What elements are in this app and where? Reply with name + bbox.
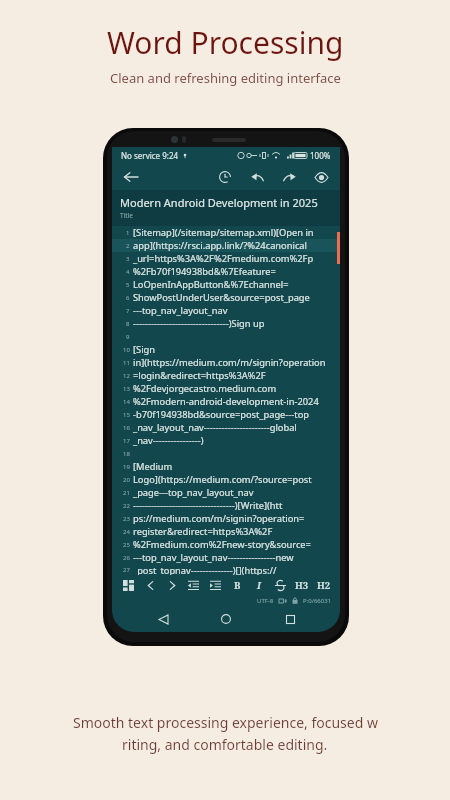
staticText: UTF-8 [257, 597, 274, 605]
staticText: 25 [123, 541, 130, 549]
button[interactable]: Outdent [184, 576, 202, 594]
staticText: 100% [310, 150, 331, 161]
staticText: _page---top_nav_layout_nav [133, 486, 254, 499]
staticText: _nav_layout_nav----------------------glo… [133, 421, 297, 434]
staticText: 7 [126, 307, 130, 315]
staticText: 1 [126, 229, 130, 237]
button[interactable]: History [214, 166, 236, 188]
staticText: 21 [123, 489, 130, 497]
staticText: 22 [123, 502, 130, 510]
staticText: ps://medium.com/m/signin?operation= [133, 512, 305, 525]
staticText: 8 [126, 320, 130, 328]
button[interactable]: Strikethrough [271, 576, 289, 594]
staticText: 3 [126, 255, 130, 263]
staticText: P:0/66031 [303, 597, 332, 605]
staticText: Smooth text processing experience, focus… [73, 713, 378, 732]
staticText: ---top_nav_layout_nav----------------new [133, 551, 294, 564]
staticText: 24 [123, 528, 130, 536]
button[interactable]: B [228, 576, 246, 594]
staticText: 10 [123, 346, 130, 354]
staticText: Clean and refreshing editing interface [110, 69, 341, 87]
staticText: -b70f194938bd&source=post_page---top [133, 408, 310, 421]
staticText: 26 [123, 554, 130, 562]
staticText: register&redirect=https%3A%2F [133, 525, 273, 538]
staticText: riting, and comfortable editing. [122, 735, 328, 754]
staticText: I [257, 579, 261, 592]
staticText: 23 [123, 515, 130, 523]
staticText: [Medium [133, 460, 173, 473]
button[interactable]: Next [163, 576, 181, 594]
staticText: 6 [126, 294, 130, 302]
staticText: ---top_nav_layout_nav [133, 304, 228, 317]
staticText: B [234, 579, 241, 592]
button[interactable]: H3 [293, 576, 311, 594]
staticText: _post_topnav--------------)[](https:// [133, 564, 277, 575]
button[interactable]: Keyboard layout [119, 576, 137, 594]
staticText: _nav----------------) [133, 434, 204, 447]
button[interactable]: Undo [246, 166, 268, 188]
button[interactable]: Recents [277, 606, 303, 632]
staticText: 2 [126, 242, 130, 250]
staticText: %2Fmodern-android-development-in-2024 [133, 395, 319, 408]
staticText: 20 [123, 476, 130, 484]
staticText: 9 [126, 333, 130, 341]
staticText: Logo](https://medium.com/?source=post [133, 473, 312, 486]
staticText: H2 [317, 579, 331, 592]
staticText: --------------------------------)Sign up [133, 317, 265, 330]
staticText: 18 [123, 450, 130, 458]
staticText: Title [120, 211, 133, 220]
staticText: 16 [123, 424, 130, 432]
staticText: 5 [126, 281, 130, 289]
staticText: 27 [123, 566, 130, 574]
staticText: [Sitemap](/sitemap/sitemap.xml)[Open in [133, 226, 314, 239]
staticText: %2Fdevjorgecastro.medium.com [133, 382, 277, 395]
staticText: No service 9:24 [121, 150, 179, 161]
staticText: 4 [126, 268, 130, 276]
button[interactable]: Indent [206, 576, 224, 594]
button[interactable]: Previous [141, 576, 159, 594]
staticText: ----------------------------------)[Writ… [133, 499, 283, 512]
staticText: [Sign [133, 343, 156, 356]
staticText: LoOpenInAppButton&%7Echannel= [133, 278, 289, 291]
staticText: 11 [123, 359, 130, 367]
button[interactable]: Preview [310, 166, 332, 188]
button[interactable]: H2 [315, 576, 333, 594]
button[interactable]: Back [120, 166, 142, 188]
staticText: 14 [123, 398, 130, 406]
staticText: _url=https%3A%2F%2Fmedium.com%2Fp [133, 252, 314, 265]
staticText: Modern Android Development in 2025 [120, 195, 318, 210]
staticText: =login&redirect=https%3A%2F [133, 369, 266, 382]
staticText: 13 [123, 385, 130, 393]
staticText: 12 [123, 372, 130, 380]
staticText: Word Processing [107, 22, 344, 63]
button[interactable]: Home [213, 606, 239, 632]
staticText: ShowPostUnderUser&source=post_page [133, 291, 310, 304]
button[interactable]: I [250, 576, 268, 594]
button[interactable]: Redo [278, 166, 300, 188]
staticText: in](https://medium.com/m/signin?operatio… [133, 356, 326, 369]
button[interactable]: Back [150, 606, 176, 632]
staticText: %2Fb70f194938bd&%7Efeature= [133, 265, 276, 278]
staticText: 17 [123, 437, 130, 445]
staticText: app](https://rsci.app.link/?%24canonical [133, 239, 307, 252]
staticText: 19 [123, 463, 130, 471]
staticText: H3 [295, 579, 309, 592]
staticText: 15 [123, 411, 130, 419]
staticText: %2Fmedium.com%2Fnew-story&source= [133, 538, 311, 551]
